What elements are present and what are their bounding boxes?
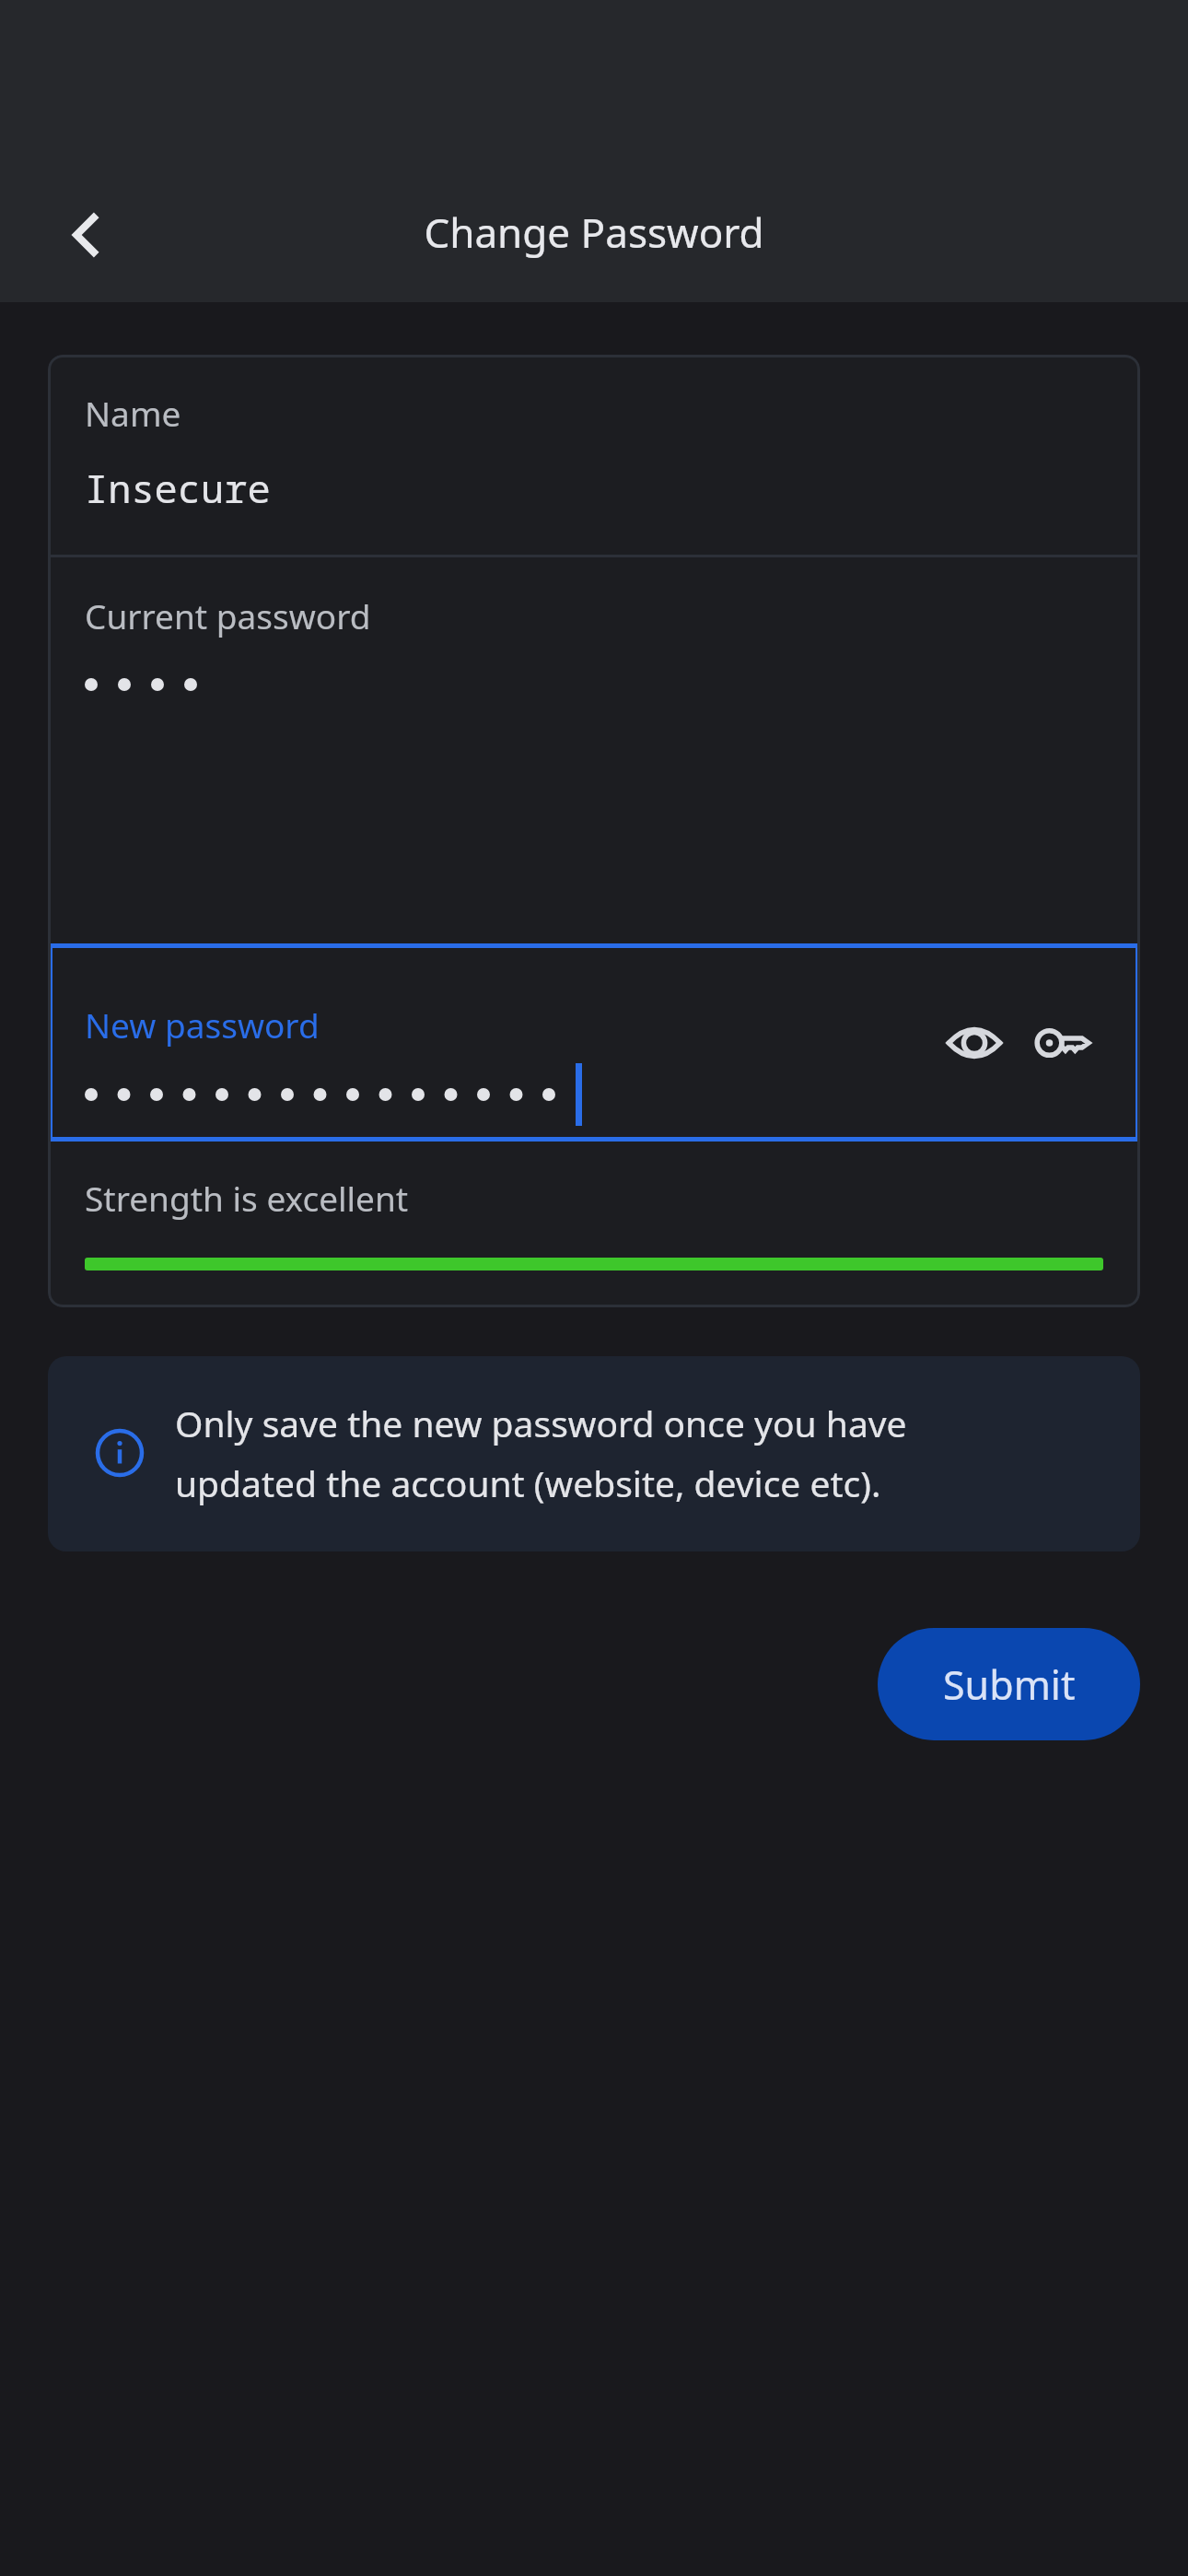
button[interactable]: New password [48,943,1140,1142]
button[interactable]: Show password [930,999,1019,1087]
staticText: Change Password [0,205,1188,260]
staticText: Insecure [85,462,271,514]
staticText: Strength is excellent [85,1175,409,1221]
button[interactable]: Generate password [1019,999,1107,1087]
staticText: Only save the new password once you have [175,1399,907,1447]
staticText: New password [85,1001,320,1048]
button[interactable]: Name [48,355,1140,555]
button[interactable]: Current password [48,557,1140,745]
staticText: updated the account (website, device etc… [175,1458,881,1507]
staticText: Submit [943,1657,1076,1712]
staticText: Name [85,390,181,436]
button[interactable]: Only save the new password once you have [48,1356,1140,1551]
button[interactable]: Submit [878,1628,1140,1740]
staticText: Current password [85,592,371,638]
button[interactable]: Back [37,184,138,286]
